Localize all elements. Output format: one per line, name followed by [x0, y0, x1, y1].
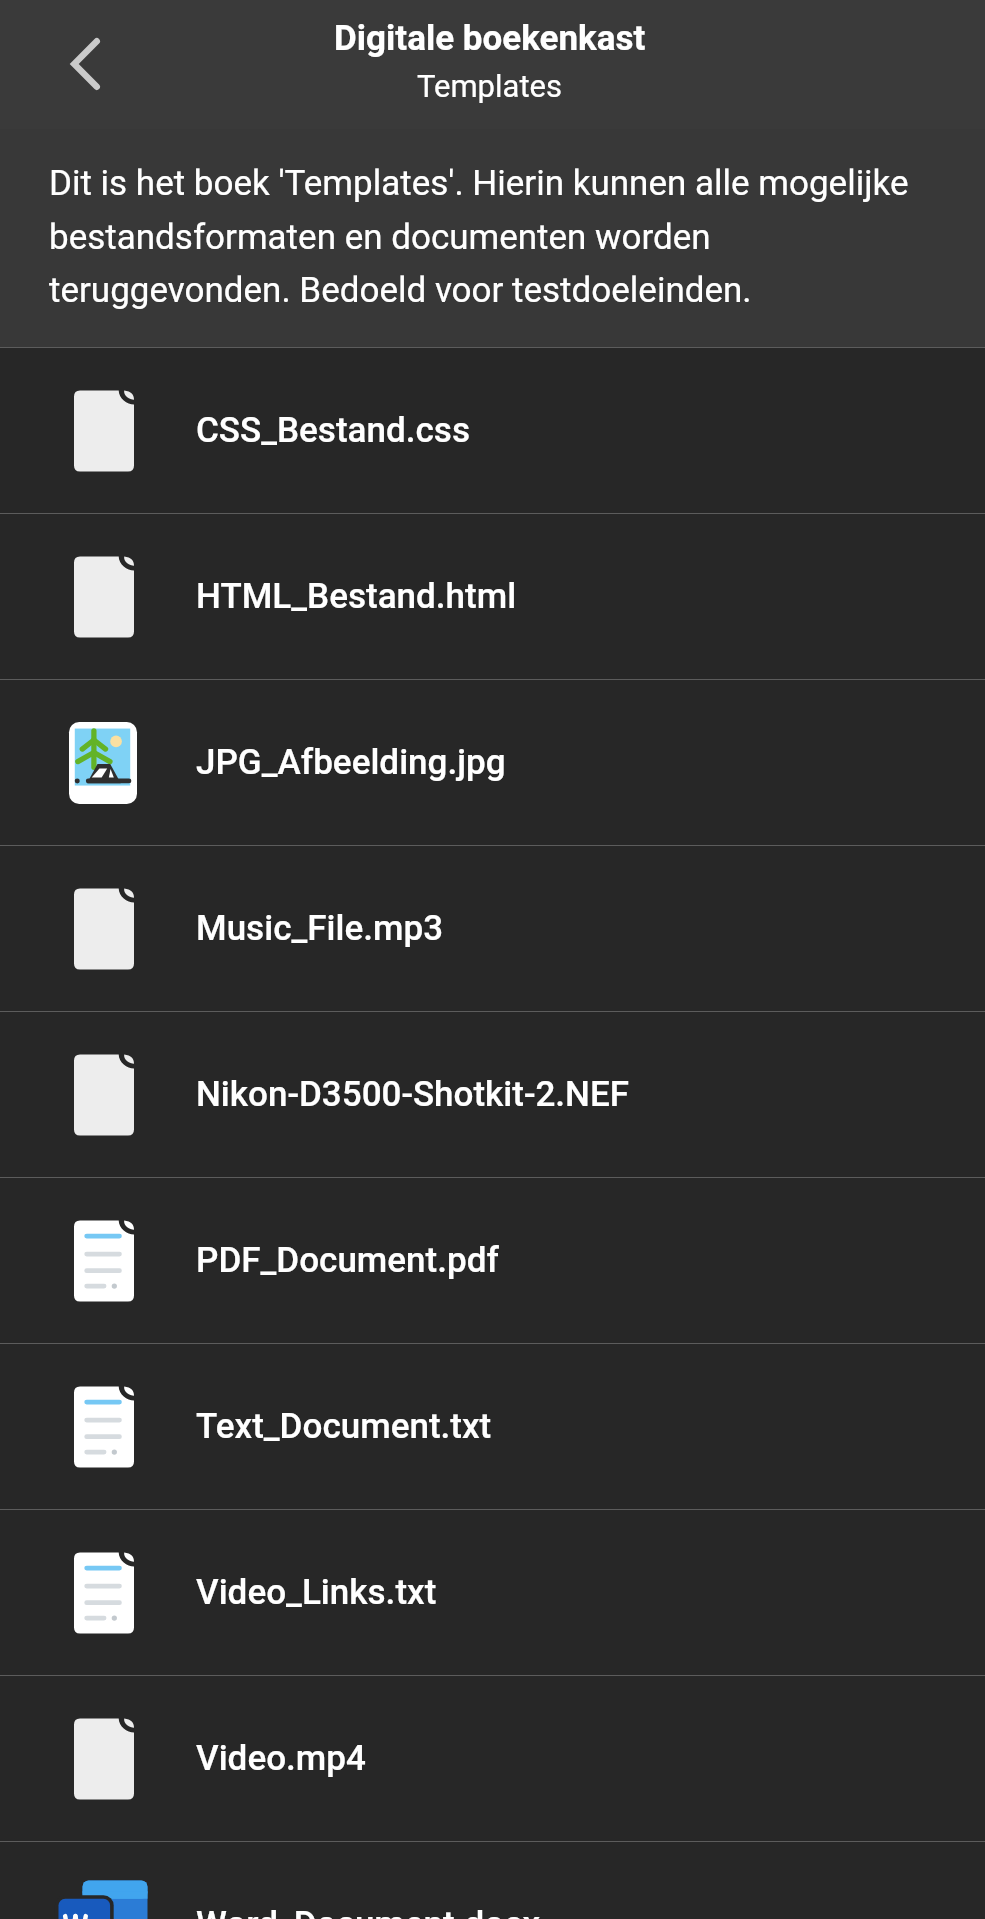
button[interactable]: Video_Links.txt [0, 1510, 985, 1675]
staticText: Video.mp4 [196, 1738, 366, 1779]
staticText: CSS_Bestand.css [196, 410, 471, 451]
staticText: Dit is het boek 'Templates'. Hierin kunn… [49, 163, 943, 311]
staticText: Digitale boekenkast [334, 18, 646, 59]
button[interactable]: Word_Document.docx [0, 1842, 985, 1919]
button[interactable]: JPG_Afbeelding.jpg [0, 680, 985, 845]
staticText: HTML_Bestand.html [196, 576, 517, 617]
button[interactable]: HTML_Bestand.html [0, 514, 985, 679]
staticText: JPG_Afbeelding.jpg [196, 742, 506, 783]
staticText: Text_Document.txt [196, 1406, 492, 1447]
button[interactable]: Text_Document.txt [0, 1344, 985, 1509]
staticText: Templates [417, 68, 563, 104]
staticText: PDF_Document.pdf [196, 1240, 499, 1281]
button[interactable]: Music_File.mp3 [0, 846, 985, 1011]
staticText: Word_Document.docx [196, 1904, 541, 1919]
staticText: Video_Links.txt [196, 1572, 437, 1613]
button[interactable]: CSS_Bestand.css [0, 348, 985, 513]
button[interactable]: Nikon-D3500-Shotkit-2.NEF [0, 1012, 985, 1177]
button[interactable]: PDF_Document.pdf [0, 1178, 985, 1343]
button[interactable]: Video.mp4 [0, 1676, 985, 1841]
staticText: Nikon-D3500-Shotkit-2.NEF [196, 1074, 630, 1115]
button[interactable]: Back [30, 9, 140, 119]
staticText: Music_File.mp3 [196, 908, 444, 949]
